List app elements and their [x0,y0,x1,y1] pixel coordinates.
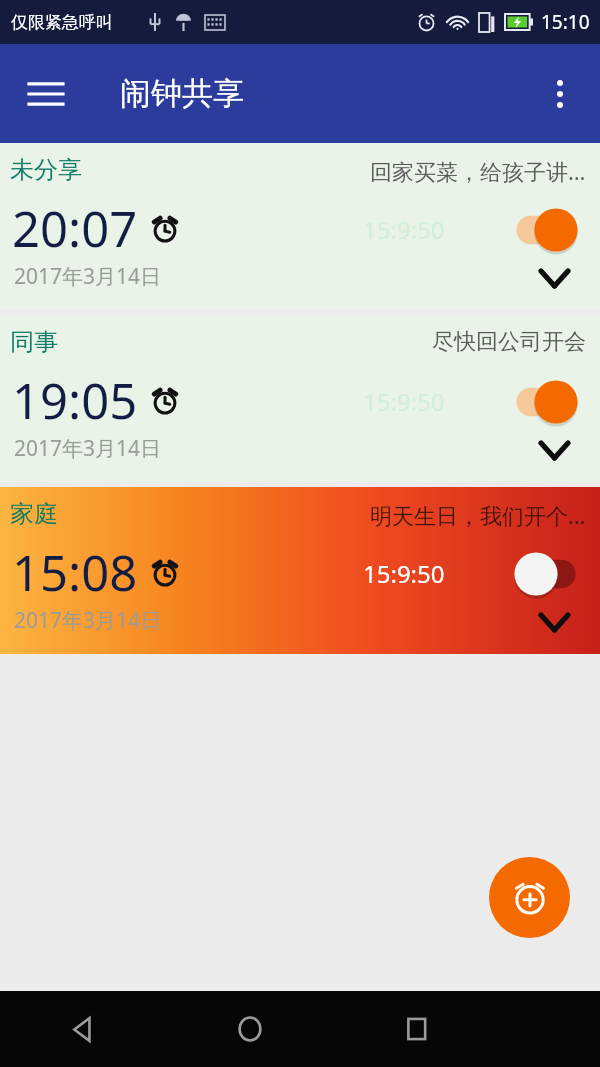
button[interactable]: Add alarm [489,857,570,938]
staticText: 20:07 [12,195,138,262]
staticText: 15:08 [12,539,138,606]
staticText: 2017年3月14日 [14,434,162,463]
button[interactable]: 同事 [0,315,600,482]
staticText: 2017年3月14日 [14,262,162,291]
button[interactable]: Recent apps [333,991,500,1067]
button[interactable]: Back [0,991,166,1067]
button[interactable]: Disable alarm [509,379,583,425]
staticText: 仅限紧急呼叫 [11,12,113,33]
button[interactable]: Expand [530,254,578,302]
button[interactable]: Disable alarm [509,207,583,253]
button[interactable]: Open navigation menu [18,66,74,122]
button[interactable]: Home [166,991,333,1067]
staticText: 未分享 [10,155,82,185]
staticText: 同事 [10,327,58,357]
button[interactable]: 未分享 [0,143,600,310]
staticText: 19:05 [12,367,138,434]
staticText: 15:9:50 [363,213,445,246]
staticText: 15:10 [541,9,590,35]
staticText: 15:9:50 [363,385,445,418]
button[interactable]: Enable alarm [509,551,583,597]
button[interactable]: Expand [530,426,578,474]
button[interactable]: 家庭 [0,487,600,654]
staticText: 家庭 [10,499,58,529]
staticText: 闹钟共享 [120,74,244,113]
staticText: 明天生日，我们开个… [370,500,586,530]
staticText: 尽快回公司开会 [432,328,586,356]
staticText: 回家买菜，给孩子讲… [370,156,586,186]
button[interactable]: Expand [530,598,578,646]
staticText: 2017年3月14日 [14,606,162,635]
staticText: 15:9:50 [363,557,445,590]
button[interactable]: More options [532,66,588,122]
